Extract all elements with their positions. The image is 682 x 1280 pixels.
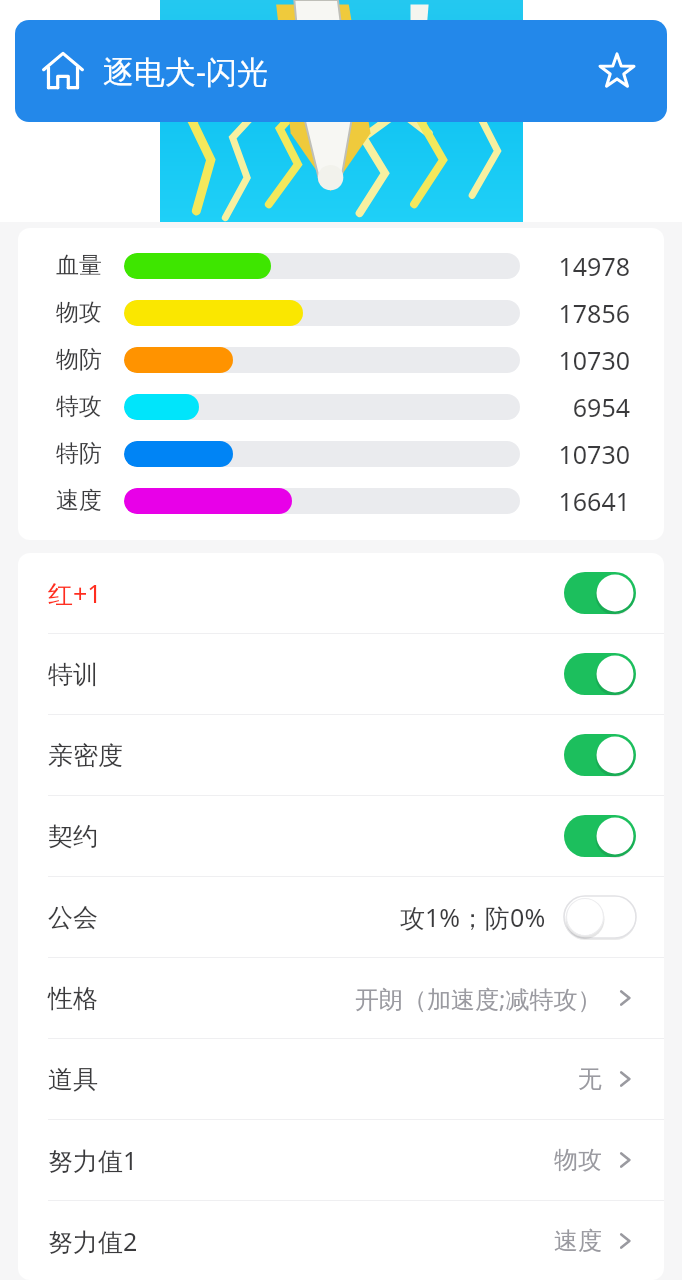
button[interactable]: On [564, 572, 636, 614]
button[interactable]: Favorite [589, 43, 645, 99]
staticText: 性格 [48, 983, 98, 1014]
staticText: 无 [578, 1064, 602, 1094]
staticText: 红+1 [48, 576, 102, 610]
staticText: 物攻 [554, 1145, 602, 1175]
staticText: 公会 [48, 902, 98, 933]
staticText: 道具 [48, 1064, 98, 1095]
button[interactable]: 亲密度 [18, 714, 664, 795]
staticText: 亲密度 [48, 740, 123, 771]
button[interactable]: 红+1 [18, 553, 664, 633]
button[interactable]: 努力值2 [18, 1200, 664, 1280]
button[interactable]: 特训 [18, 633, 664, 714]
staticText: 物攻 [56, 298, 102, 327]
staticText: 特攻 [56, 392, 102, 421]
button[interactable]: 契约 [18, 795, 664, 876]
button[interactable]: Home [37, 45, 89, 97]
staticText: 努力值2 [48, 1224, 138, 1258]
staticText: 特训 [48, 659, 98, 690]
staticText: 契约 [48, 821, 98, 852]
staticText: 速度 [56, 486, 102, 515]
staticText: 特防 [56, 439, 102, 468]
staticText: 努力值1 [48, 1143, 138, 1177]
staticText: 14978 [558, 249, 630, 283]
button[interactable]: Off [564, 896, 636, 938]
staticText: 血量 [56, 251, 102, 280]
staticText: 10730 [558, 437, 630, 471]
button[interactable]: 公会 [18, 876, 664, 957]
staticText: 16641 [558, 484, 630, 518]
button[interactable]: On [564, 653, 636, 695]
button[interactable]: 性格 [18, 957, 664, 1038]
staticText: 17856 [558, 296, 630, 330]
staticText: 逐电犬-闪光 [103, 50, 268, 92]
staticText: 6954 [572, 390, 630, 424]
button[interactable]: 道具 [18, 1038, 664, 1119]
button[interactable]: On [564, 734, 636, 776]
button[interactable]: On [564, 815, 636, 857]
staticText: 开朗（加速度;减特攻） [355, 982, 602, 1015]
button[interactable]: 努力值1 [18, 1119, 664, 1200]
staticText: 10730 [558, 343, 630, 377]
staticText: 速度 [554, 1226, 602, 1256]
staticText: 攻1%；防0% [400, 900, 546, 934]
staticText: 物防 [56, 345, 102, 374]
